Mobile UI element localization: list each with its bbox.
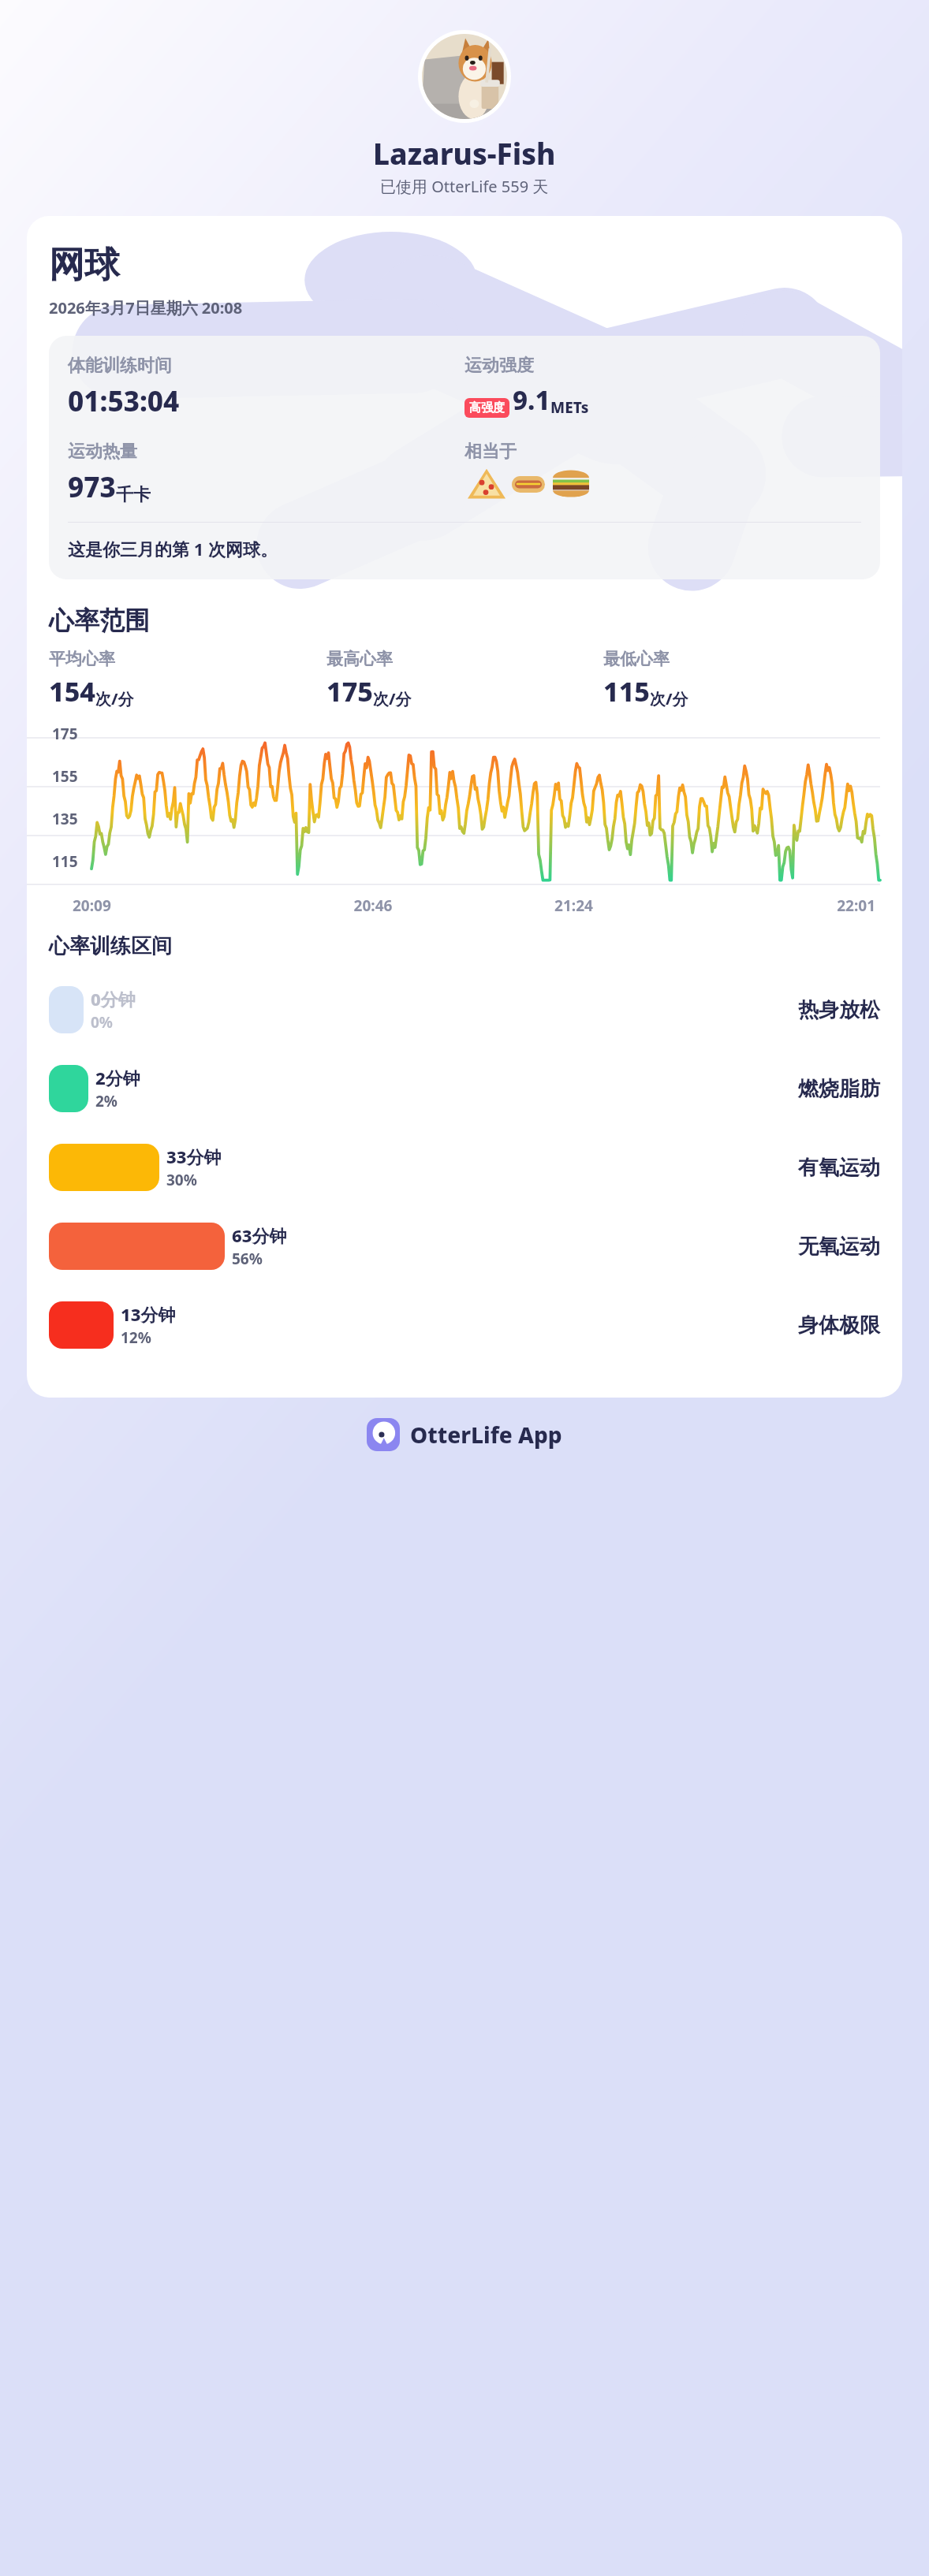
staticText: 135 xyxy=(52,809,78,829)
staticText: 体能训练时间 xyxy=(68,355,172,377)
staticText: 20:46 xyxy=(273,895,473,916)
button[interactable]: 33分钟 xyxy=(49,1128,880,1207)
staticText: 运动热量 xyxy=(68,441,137,463)
staticText: 次/分 xyxy=(95,688,134,709)
staticText: 155 xyxy=(52,766,78,787)
staticText: 2分钟 xyxy=(95,1066,140,1089)
staticText: 12% xyxy=(121,1327,151,1348)
button[interactable]: 0分钟 xyxy=(49,970,880,1049)
button[interactable]: OtterLife App xyxy=(0,1418,929,1451)
staticText: Lazarus-Fish xyxy=(373,133,556,173)
staticText: 21:24 xyxy=(473,895,674,916)
staticText: 心率训练区间 xyxy=(49,933,172,959)
staticText: 平均心率 xyxy=(49,649,115,669)
staticText: 运动强度 xyxy=(464,355,534,377)
staticText: 最高心率 xyxy=(326,649,393,669)
staticText: 2% xyxy=(95,1091,118,1111)
staticText: 次/分 xyxy=(650,688,688,709)
staticText: 01:53:04 xyxy=(68,382,180,420)
staticText: 9.1 xyxy=(513,382,550,418)
staticText: 身体极限 xyxy=(798,1312,880,1338)
staticText: 已使用 OtterLife 559 天 xyxy=(380,176,549,197)
button[interactable]: 63分钟 xyxy=(49,1207,880,1286)
staticText: 这是你三月的第 1 次网球。 xyxy=(68,537,278,560)
staticText: 相当于 xyxy=(464,441,517,463)
button[interactable]: 2分钟 xyxy=(49,1049,880,1128)
staticText: 20:09 xyxy=(73,895,273,916)
staticText: 115 xyxy=(603,673,650,709)
staticText: 22:01 xyxy=(674,895,875,916)
staticText: METs xyxy=(550,397,589,418)
other: Profile photo xyxy=(422,34,507,119)
staticText: 次/分 xyxy=(373,688,412,709)
staticText: 心率范围 xyxy=(49,605,150,636)
staticText: 63分钟 xyxy=(232,1223,287,1247)
staticText: 热身放松 xyxy=(798,997,880,1023)
staticText: 高强度 xyxy=(469,400,505,415)
staticText: 千卡 xyxy=(116,484,151,506)
staticText: 973 xyxy=(68,468,116,506)
staticText: 175 xyxy=(52,724,78,744)
staticText: 燃烧脂肪 xyxy=(798,1076,880,1102)
staticText: 154 xyxy=(49,673,95,709)
staticText: 0% xyxy=(91,1012,114,1033)
staticText: 最低心率 xyxy=(603,649,670,669)
button[interactable]: 13分钟 xyxy=(49,1286,880,1364)
staticText: 0分钟 xyxy=(91,987,136,1011)
staticText: 56% xyxy=(232,1249,263,1269)
staticText: 115 xyxy=(52,851,78,872)
staticText: 13分钟 xyxy=(121,1302,176,1326)
staticText: 2026年3月7日星期六 20:08 xyxy=(49,297,243,318)
staticText: 175 xyxy=(326,673,373,709)
staticText: 30% xyxy=(166,1170,197,1190)
staticText: 33分钟 xyxy=(166,1145,222,1168)
staticText: 有氧运动 xyxy=(798,1155,880,1181)
staticText: 网球 xyxy=(49,243,120,288)
staticText: OtterLife App xyxy=(410,1420,562,1450)
staticText: 无氧运动 xyxy=(798,1234,880,1260)
